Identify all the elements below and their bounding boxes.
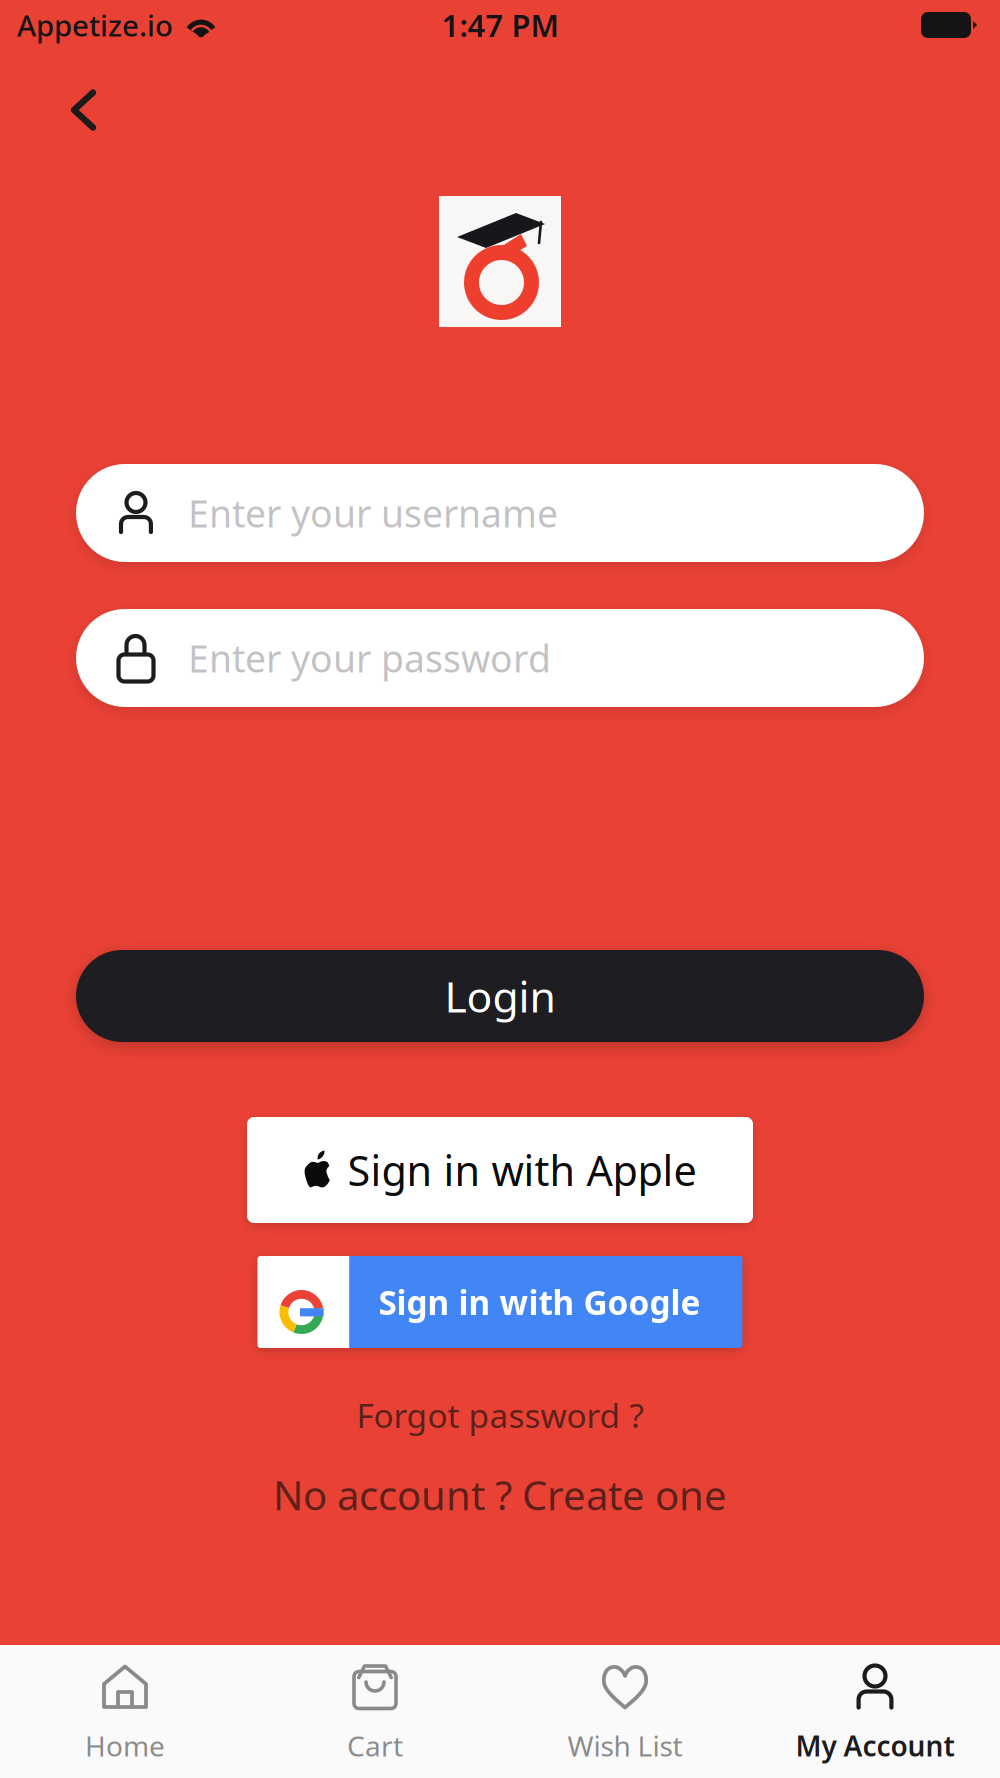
staticText: Login (444, 968, 555, 1024)
staticText: Home (85, 1727, 165, 1764)
button[interactable]: Sign in with Apple (247, 1117, 753, 1223)
button[interactable]: Back (50, 69, 117, 151)
staticText: Sign in with Apple (347, 1143, 696, 1197)
button[interactable]: No account ? Create one (263, 1458, 737, 1531)
staticText: Forgot password ? (356, 1393, 643, 1437)
staticText: Sign in with Google (378, 1280, 700, 1324)
staticText: Wish List (567, 1727, 682, 1764)
button[interactable]: Enter your password (76, 609, 924, 707)
button[interactable]: Sign in with Google (257, 1256, 742, 1348)
button[interactable]: Enter your username (76, 464, 924, 562)
staticText: Enter your username (188, 488, 558, 538)
button[interactable]: My Account (750, 1645, 1000, 1778)
button[interactable]: Forgot password ? (346, 1383, 653, 1447)
staticText: Enter your password (188, 633, 551, 683)
staticText: Appetize.io (17, 5, 173, 44)
staticText: My Account (795, 1727, 954, 1764)
button[interactable]: Wish List (500, 1645, 750, 1778)
staticText: No account ? Create one (273, 1468, 727, 1521)
button[interactable]: Cart (250, 1645, 500, 1778)
button[interactable]: Login (76, 950, 924, 1042)
staticText: Cart (347, 1727, 403, 1764)
staticText: 1:47 PM (441, 5, 558, 45)
button[interactable]: Home (0, 1645, 250, 1778)
